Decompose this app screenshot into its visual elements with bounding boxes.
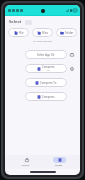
button[interactable]: File — [8, 28, 29, 37]
button[interactable]: Files — [32, 28, 53, 37]
staticText: Folder — [65, 31, 74, 35]
staticText: Files — [42, 31, 49, 35]
staticText: ZIP — [47, 69, 51, 72]
button[interactable]: Open directory — [69, 52, 75, 58]
button[interactable]: Folder — [56, 28, 77, 37]
button[interactable]: Extract — [13, 156, 39, 168]
staticText: No Files Selected — [5, 39, 80, 42]
staticText: Select App Dir — [37, 53, 55, 57]
staticText: Extract — [22, 164, 30, 167]
button[interactable]: Compress — [25, 64, 67, 73]
button[interactable]: Compress To — [25, 78, 67, 87]
staticText: Compress To — [40, 81, 57, 85]
staticText: Compress — [42, 65, 55, 69]
button[interactable]: Compress — [25, 92, 67, 101]
staticText: File — [19, 31, 24, 35]
staticText: Compress — [42, 95, 55, 99]
staticText: Create — [55, 164, 63, 167]
staticText: Select — [9, 19, 22, 25]
button[interactable]: Select App Dir — [25, 50, 67, 59]
button[interactable]: Create — [46, 156, 72, 168]
button[interactable]: Compression settings — [69, 66, 75, 72]
